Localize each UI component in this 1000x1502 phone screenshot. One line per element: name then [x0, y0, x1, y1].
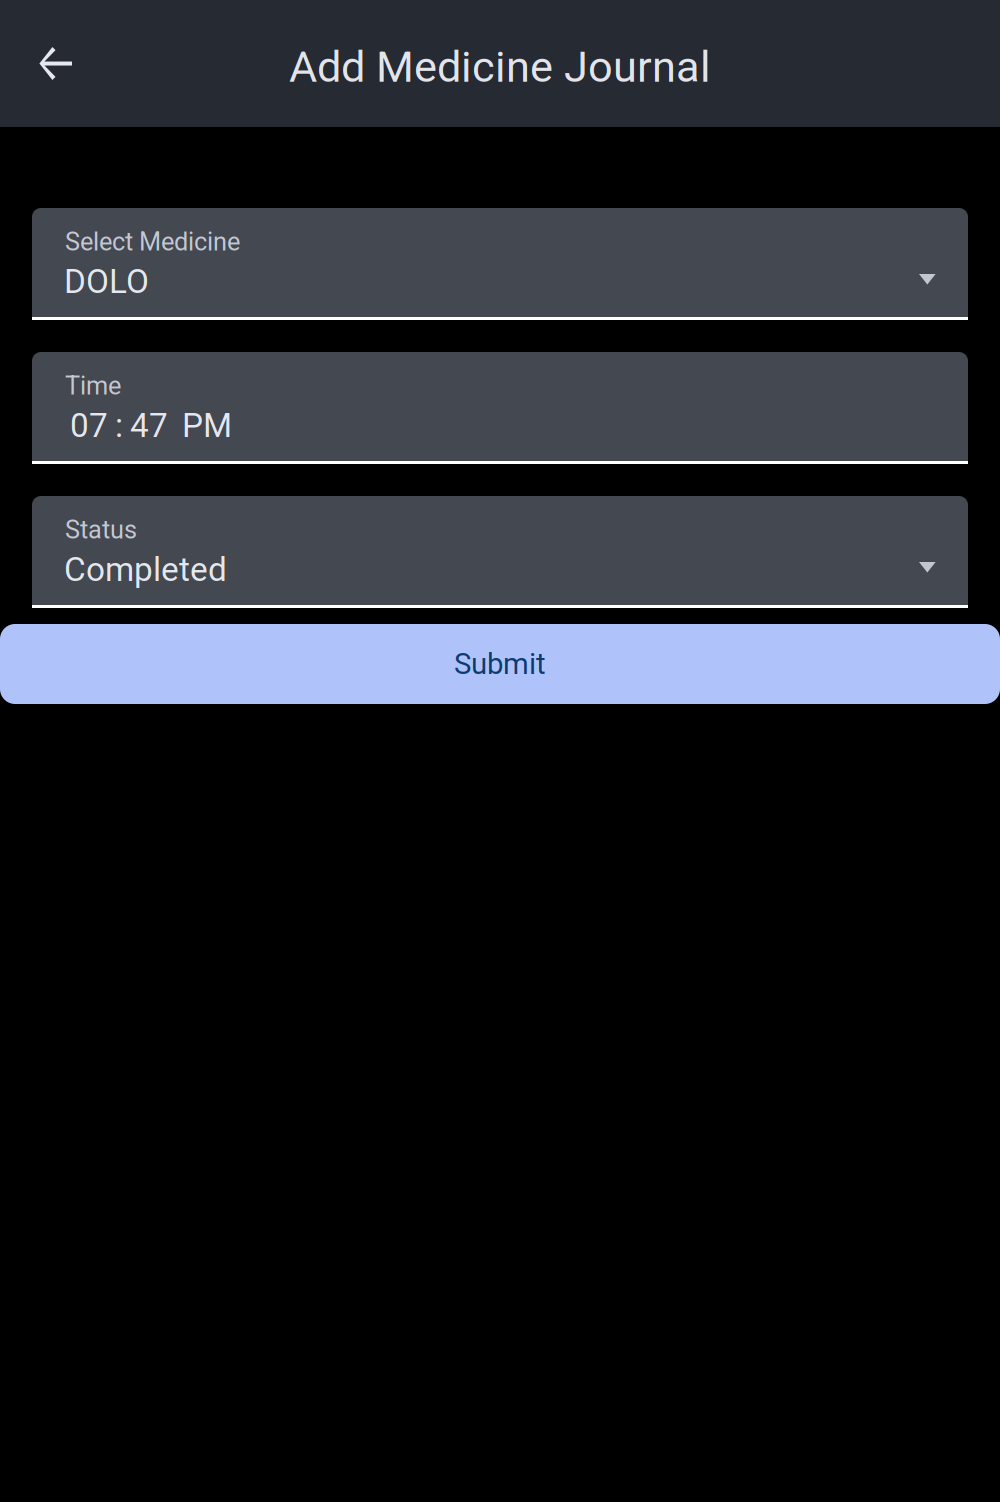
- button[interactable]: Back: [12, 20, 100, 108]
- button[interactable]: Time: [32, 352, 968, 464]
- staticText: DOLO: [64, 262, 149, 301]
- staticText: Completed: [64, 550, 227, 589]
- button[interactable]: Add Medicine Journal: [270, 41, 730, 93]
- button[interactable]: Select Medicine: [32, 208, 968, 320]
- staticText: Submit: [454, 647, 546, 681]
- staticText: Add Medicine Journal: [289, 42, 711, 92]
- button[interactable]: Status: [32, 496, 968, 608]
- staticText: Time: [65, 371, 121, 401]
- staticText: Status: [65, 515, 137, 545]
- staticText: Select Medicine: [65, 227, 240, 257]
- staticText: 07 : 47 PM: [70, 406, 232, 445]
- button[interactable]: Submit: [0, 624, 1000, 704]
